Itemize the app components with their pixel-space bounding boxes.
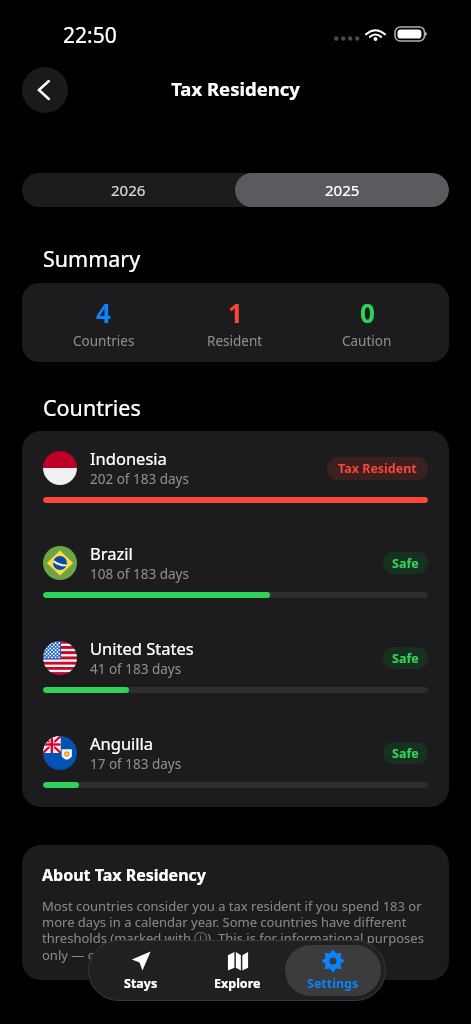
- staticText: 2026: [111, 180, 146, 200]
- button[interactable]: Tax Resident: [327, 457, 428, 480]
- button[interactable]: Settings: [285, 945, 381, 996]
- button[interactable]: Anguilla: [22, 736, 449, 788]
- staticText: Safe: [392, 555, 419, 572]
- staticText: 0: [360, 295, 375, 330]
- staticText: 41 of 183 days: [90, 660, 182, 678]
- button[interactable]: 0: [301, 295, 433, 350]
- button[interactable]: Safe: [383, 552, 428, 574]
- staticText: 1: [228, 295, 243, 330]
- button[interactable]: 1: [169, 295, 301, 350]
- staticText: Safe: [392, 650, 419, 667]
- button[interactable]: Back: [22, 67, 68, 113]
- button[interactable]: Safe: [383, 647, 428, 669]
- staticText: Settings: [307, 975, 359, 992]
- staticText: About Tax Residency: [42, 864, 206, 886]
- button[interactable]: 4: [38, 295, 169, 350]
- staticText: United States: [90, 637, 194, 659]
- button[interactable]: Stays: [93, 945, 189, 996]
- staticText: Resident: [207, 332, 263, 350]
- staticText: Countries: [43, 393, 141, 422]
- staticText: Indonesia: [90, 447, 167, 469]
- staticText: 2025: [325, 180, 360, 200]
- staticText: Safe: [392, 745, 419, 762]
- staticText: 22:50: [63, 21, 117, 50]
- button[interactable]: Indonesia: [22, 451, 449, 503]
- staticText: 17 of 183 days: [90, 755, 182, 773]
- staticText: Stays: [124, 975, 158, 992]
- button[interactable]: Brazil: [22, 546, 449, 598]
- staticText: Brazil: [90, 542, 133, 564]
- staticText: 202 of 183 days: [90, 470, 189, 488]
- button[interactable]: Explore: [189, 945, 285, 996]
- staticText: Countries: [73, 332, 135, 350]
- button[interactable]: United States: [22, 641, 449, 693]
- staticText: Tax Residency: [0, 76, 471, 101]
- staticText: Anguilla: [90, 732, 154, 754]
- button[interactable]: Safe: [383, 742, 428, 764]
- button[interactable]: 2026: [22, 173, 235, 207]
- staticText: Summary: [43, 244, 141, 273]
- staticText: 108 of 183 days: [90, 565, 189, 583]
- staticText: 4: [96, 295, 111, 330]
- staticText: Most countries consider you a tax reside…: [42, 897, 429, 963]
- staticText: Tax Resident: [338, 460, 417, 477]
- staticText: Explore: [214, 975, 261, 992]
- button[interactable]: 2025: [235, 173, 449, 207]
- staticText: Caution: [342, 332, 392, 350]
